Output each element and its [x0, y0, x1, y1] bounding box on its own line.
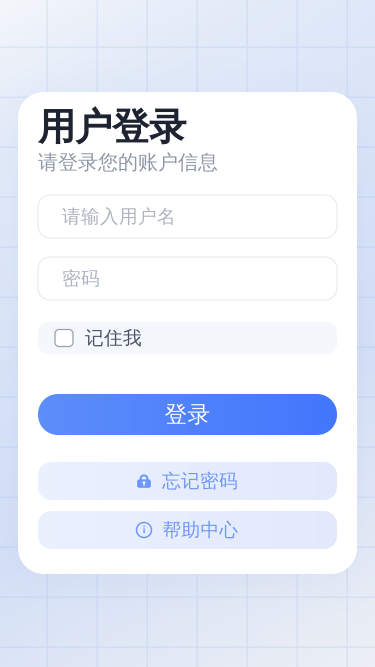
button[interactable]: 忘记密码 — [38, 462, 337, 500]
button[interactable]: 帮助中心 — [38, 511, 337, 549]
staticText: 请登录您的账户信息 — [38, 150, 218, 175]
staticText: 请输入用户名 — [62, 205, 176, 228]
staticText: 登录 — [164, 401, 210, 428]
staticText: 忘记密码 — [162, 469, 238, 492]
button[interactable]: 登录 — [38, 394, 337, 435]
staticText: 记住我 — [85, 326, 142, 349]
staticText: 用户登录 — [38, 104, 186, 150]
button[interactable]: 记住我 — [38, 322, 337, 354]
staticText: 帮助中心 — [162, 518, 238, 541]
staticText: 密码 — [62, 267, 100, 290]
